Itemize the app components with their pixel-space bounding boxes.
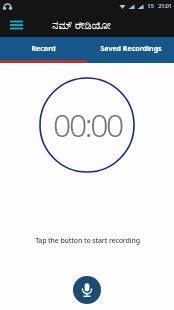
staticText: 15 [147,2,154,10]
staticText: 00:00 [53,103,122,147]
staticText: 21:01 [158,2,172,10]
button[interactable] [7,16,25,34]
button[interactable]: Record [0,37,87,63]
staticText: Saved Recordings [100,44,162,54]
staticText: ನಮ್ ರೇಡಿಯೋ [52,17,111,32]
button[interactable] [73,276,101,304]
button[interactable]: Saved Recordings [87,37,174,63]
staticText: Record [31,44,56,54]
staticText: Tap the button to start recording [35,236,140,246]
